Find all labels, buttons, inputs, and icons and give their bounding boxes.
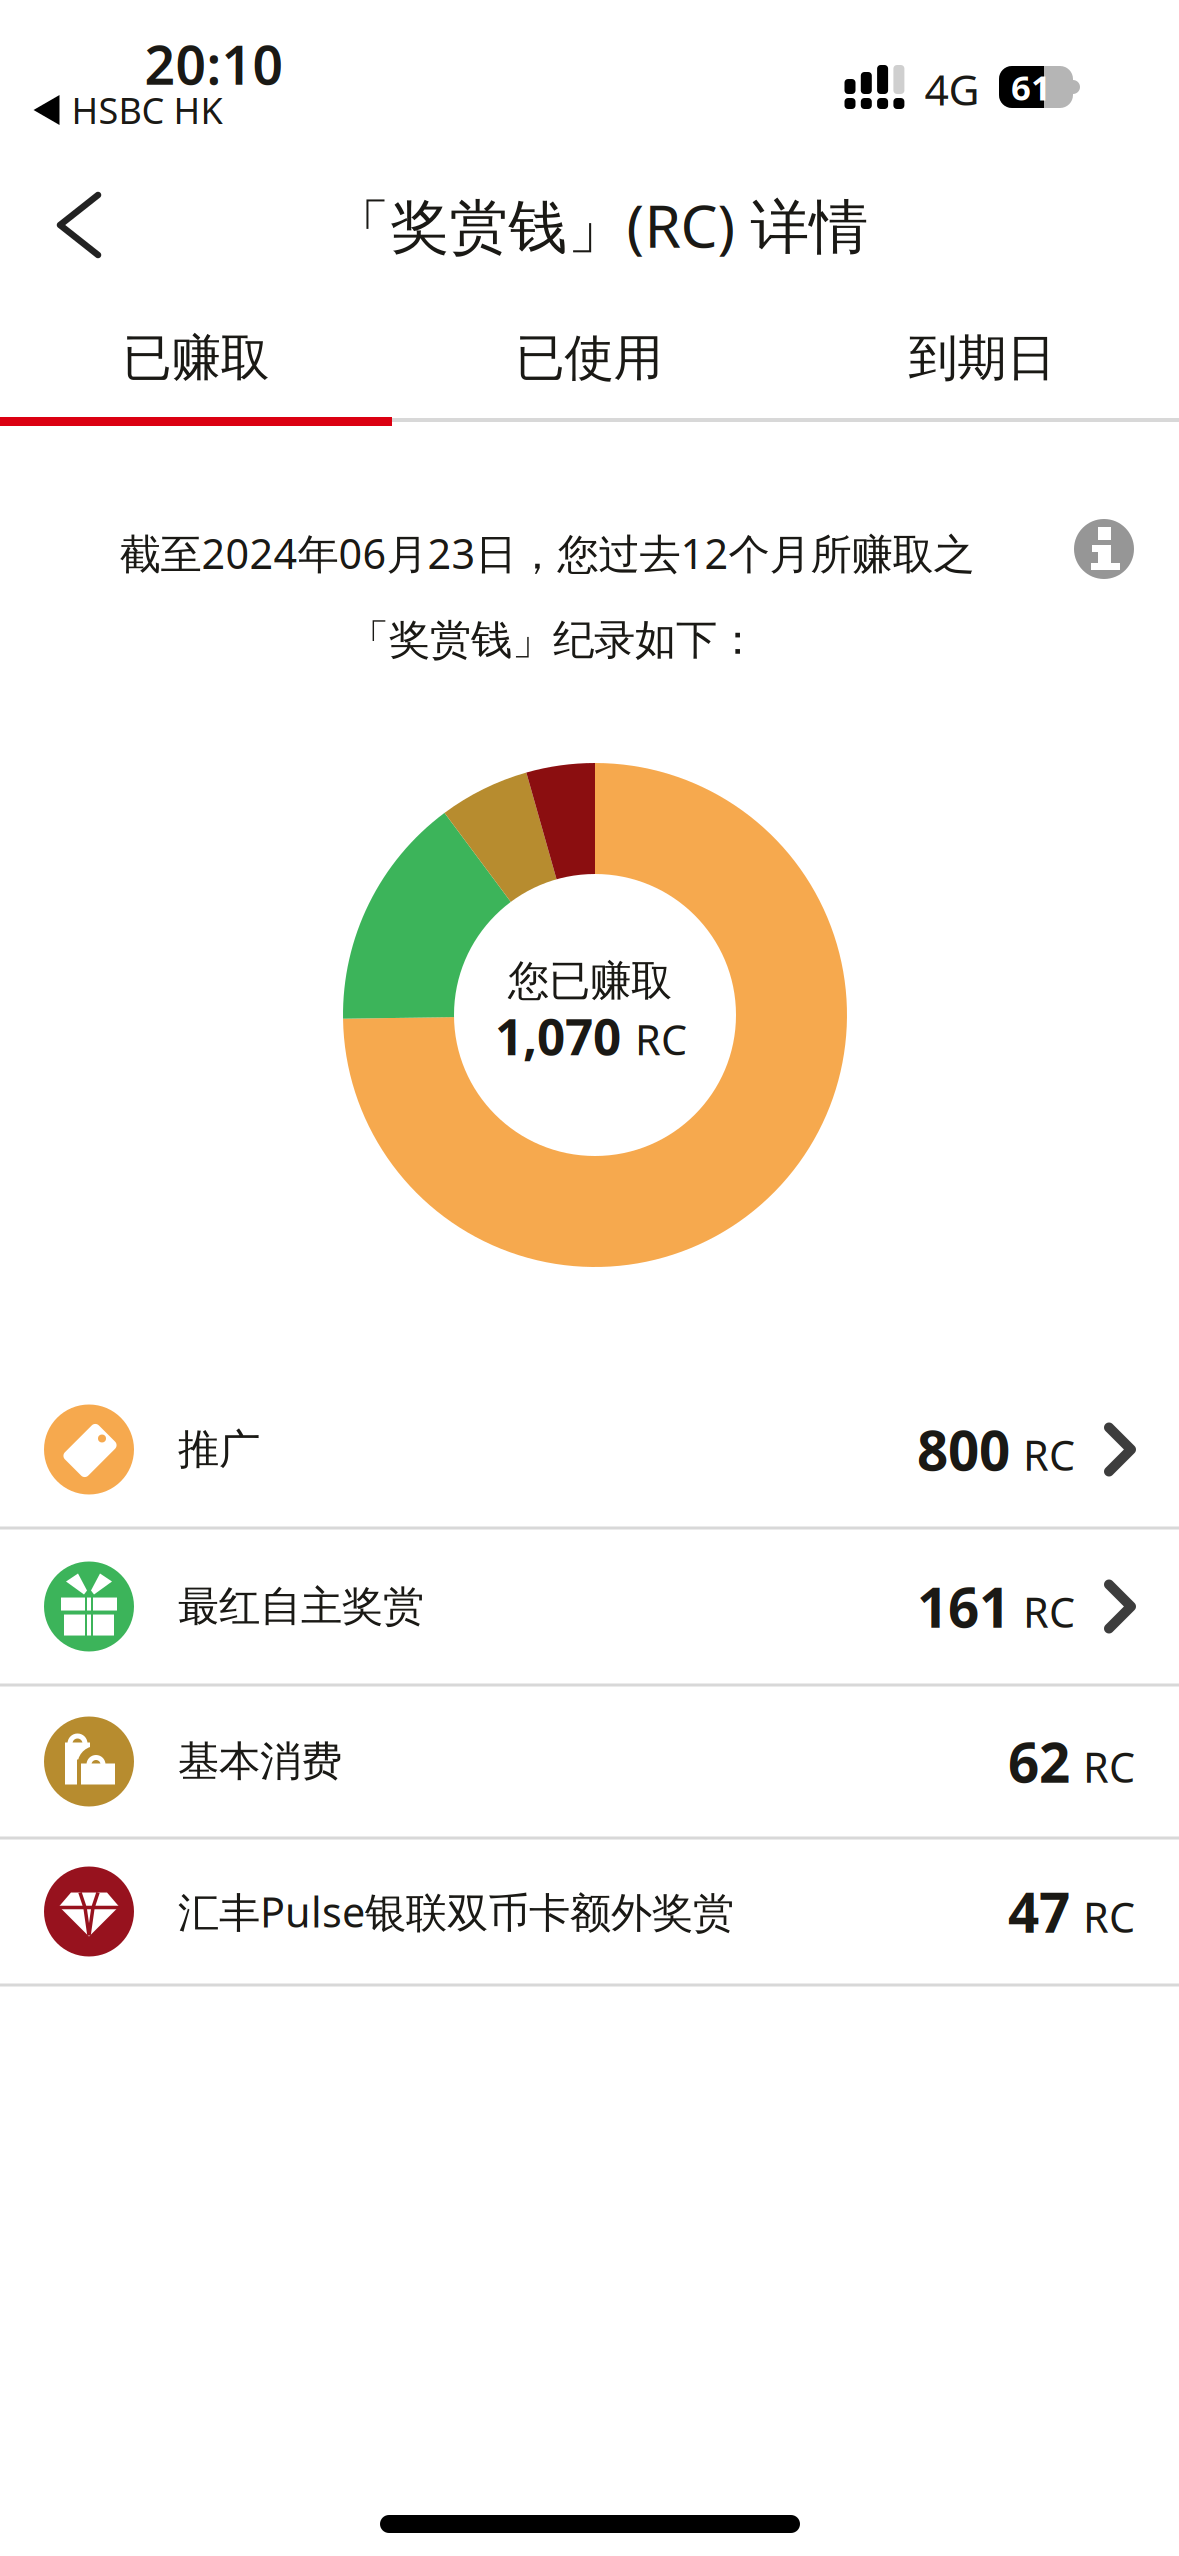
staticText: 基本消费 [178,1736,342,1787]
staticText: 已使用 [515,328,662,388]
button[interactable]: 推广 [0,1371,1179,1528]
button[interactable]: Back [29,175,129,275]
button[interactable]: 已赚取 [0,303,392,413]
button[interactable]: 到期日 [786,303,1178,413]
staticText: RC [1083,1889,1135,1944]
staticText: 20:10 [144,29,283,99]
staticText: 「奖赏钱」纪录如下： [348,615,758,665]
staticText: 「奖赏钱」(RC) 详情 [331,186,868,264]
staticText: 800 [917,1413,1010,1486]
button[interactable]: 最红自主奖赏 [0,1528,1179,1685]
staticText: 截至2024年06月23日，您过去12个月所赚取之 [119,526,974,580]
staticText: 汇丰Pulse银联双币卡额外奖赏 [178,1884,734,1939]
staticText: 最红自主奖赏 [178,1581,424,1632]
staticText: RC [1083,1739,1135,1794]
button[interactable]: 已使用 [393,303,785,413]
staticText: 4G [924,61,979,117]
staticText: 到期日 [908,328,1055,388]
staticText: 推广 [178,1424,260,1475]
staticText: 1,070 [495,1003,621,1069]
staticText: 161 [917,1570,1010,1643]
button[interactable]: Info [1074,519,1134,579]
staticText: RC [635,1012,687,1067]
staticText: 47 [1008,1875,1070,1948]
staticText: 已赚取 [122,328,269,388]
staticText: 61 [1011,64,1051,110]
staticText: 62 [1008,1725,1070,1798]
staticText: HSBC HK [71,86,222,134]
staticText: 您已赚取 [508,956,672,1006]
staticText: RC [1023,1427,1075,1482]
staticText: RC [1023,1584,1075,1639]
